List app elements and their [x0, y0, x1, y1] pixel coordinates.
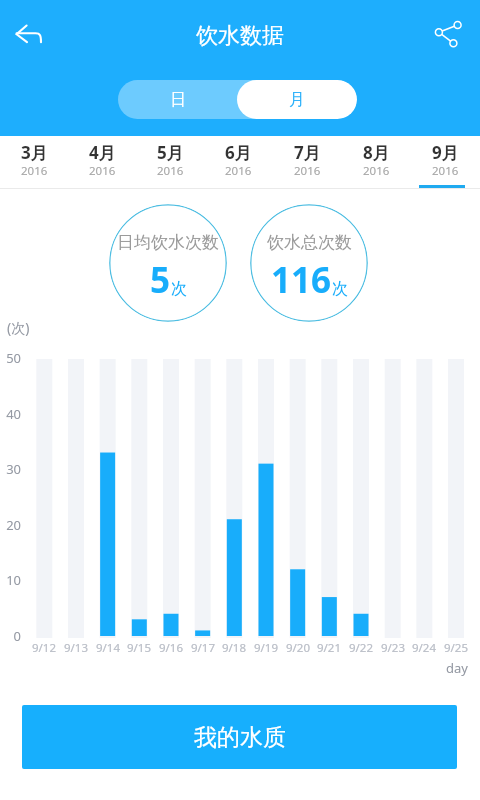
button[interactable]: 7月 [273, 136, 342, 189]
staticText: 10 [0, 571, 21, 589]
staticText: 20 [0, 516, 21, 534]
staticText: 5月 [157, 141, 184, 164]
staticText: 2016 [432, 163, 459, 179]
button[interactable]: 饮水总次数 [250, 204, 368, 322]
staticText: 9/25 [439, 640, 473, 656]
staticText: 饮水总次数 [267, 232, 352, 253]
staticText: 7月 [294, 141, 321, 164]
staticText: 9/17 [186, 640, 220, 656]
staticText: day [446, 659, 468, 677]
staticText: 9/19 [249, 640, 283, 656]
staticText: 9/22 [344, 640, 378, 656]
button[interactable]: 月 [237, 80, 357, 119]
staticText: 8月 [363, 141, 390, 164]
staticText: 9/13 [59, 640, 93, 656]
staticText: 9/21 [312, 640, 346, 656]
button[interactable]: 5月 [136, 136, 204, 189]
staticText: 月 [289, 90, 305, 110]
staticText: 日 [170, 90, 186, 110]
staticText: 116 [271, 256, 332, 304]
staticText: 9月 [432, 141, 459, 164]
staticText: 9/14 [91, 640, 125, 656]
staticText: 9/23 [376, 640, 410, 656]
staticText: 次 [171, 279, 187, 299]
staticText: 0 [0, 627, 21, 645]
staticText: 5 [150, 256, 171, 304]
staticText: 9/18 [217, 640, 251, 656]
button[interactable]: 我的水质 [22, 705, 457, 769]
staticText: 2016 [21, 163, 48, 179]
staticText: 2016 [157, 163, 184, 179]
staticText: 9/15 [122, 640, 156, 656]
staticText: (次) [7, 318, 30, 337]
button[interactable]: 8月 [342, 136, 411, 189]
staticText: 50 [0, 349, 21, 367]
staticText: 9/20 [281, 640, 315, 656]
staticText: 9/12 [27, 640, 61, 656]
button[interactable]: 日 [118, 80, 237, 119]
staticText: 40 [0, 405, 21, 423]
staticText: 9/24 [407, 640, 441, 656]
staticText: 9/16 [154, 640, 188, 656]
staticText: 我的水质 [194, 723, 286, 752]
staticText: 次 [332, 279, 348, 299]
staticText: 2016 [225, 163, 252, 179]
button[interactable]: 4月 [68, 136, 136, 189]
staticText: 日均饮水次数 [117, 232, 219, 253]
button[interactable]: Back [7, 12, 51, 56]
button[interactable]: 3月 [0, 136, 68, 189]
button[interactable]: Share [428, 12, 472, 56]
staticText: 4月 [89, 141, 116, 164]
staticText: 2016 [363, 163, 390, 179]
staticText: 2016 [294, 163, 321, 179]
button[interactable]: 6月 [204, 136, 273, 189]
staticText: 饮水数据 [196, 22, 284, 50]
staticText: 30 [0, 460, 21, 478]
staticText: 6月 [225, 141, 252, 164]
button[interactable]: 9月 [411, 136, 480, 189]
button[interactable]: 日均饮水次数 [109, 204, 227, 322]
staticText: 2016 [89, 163, 116, 179]
staticText: 3月 [21, 141, 48, 164]
